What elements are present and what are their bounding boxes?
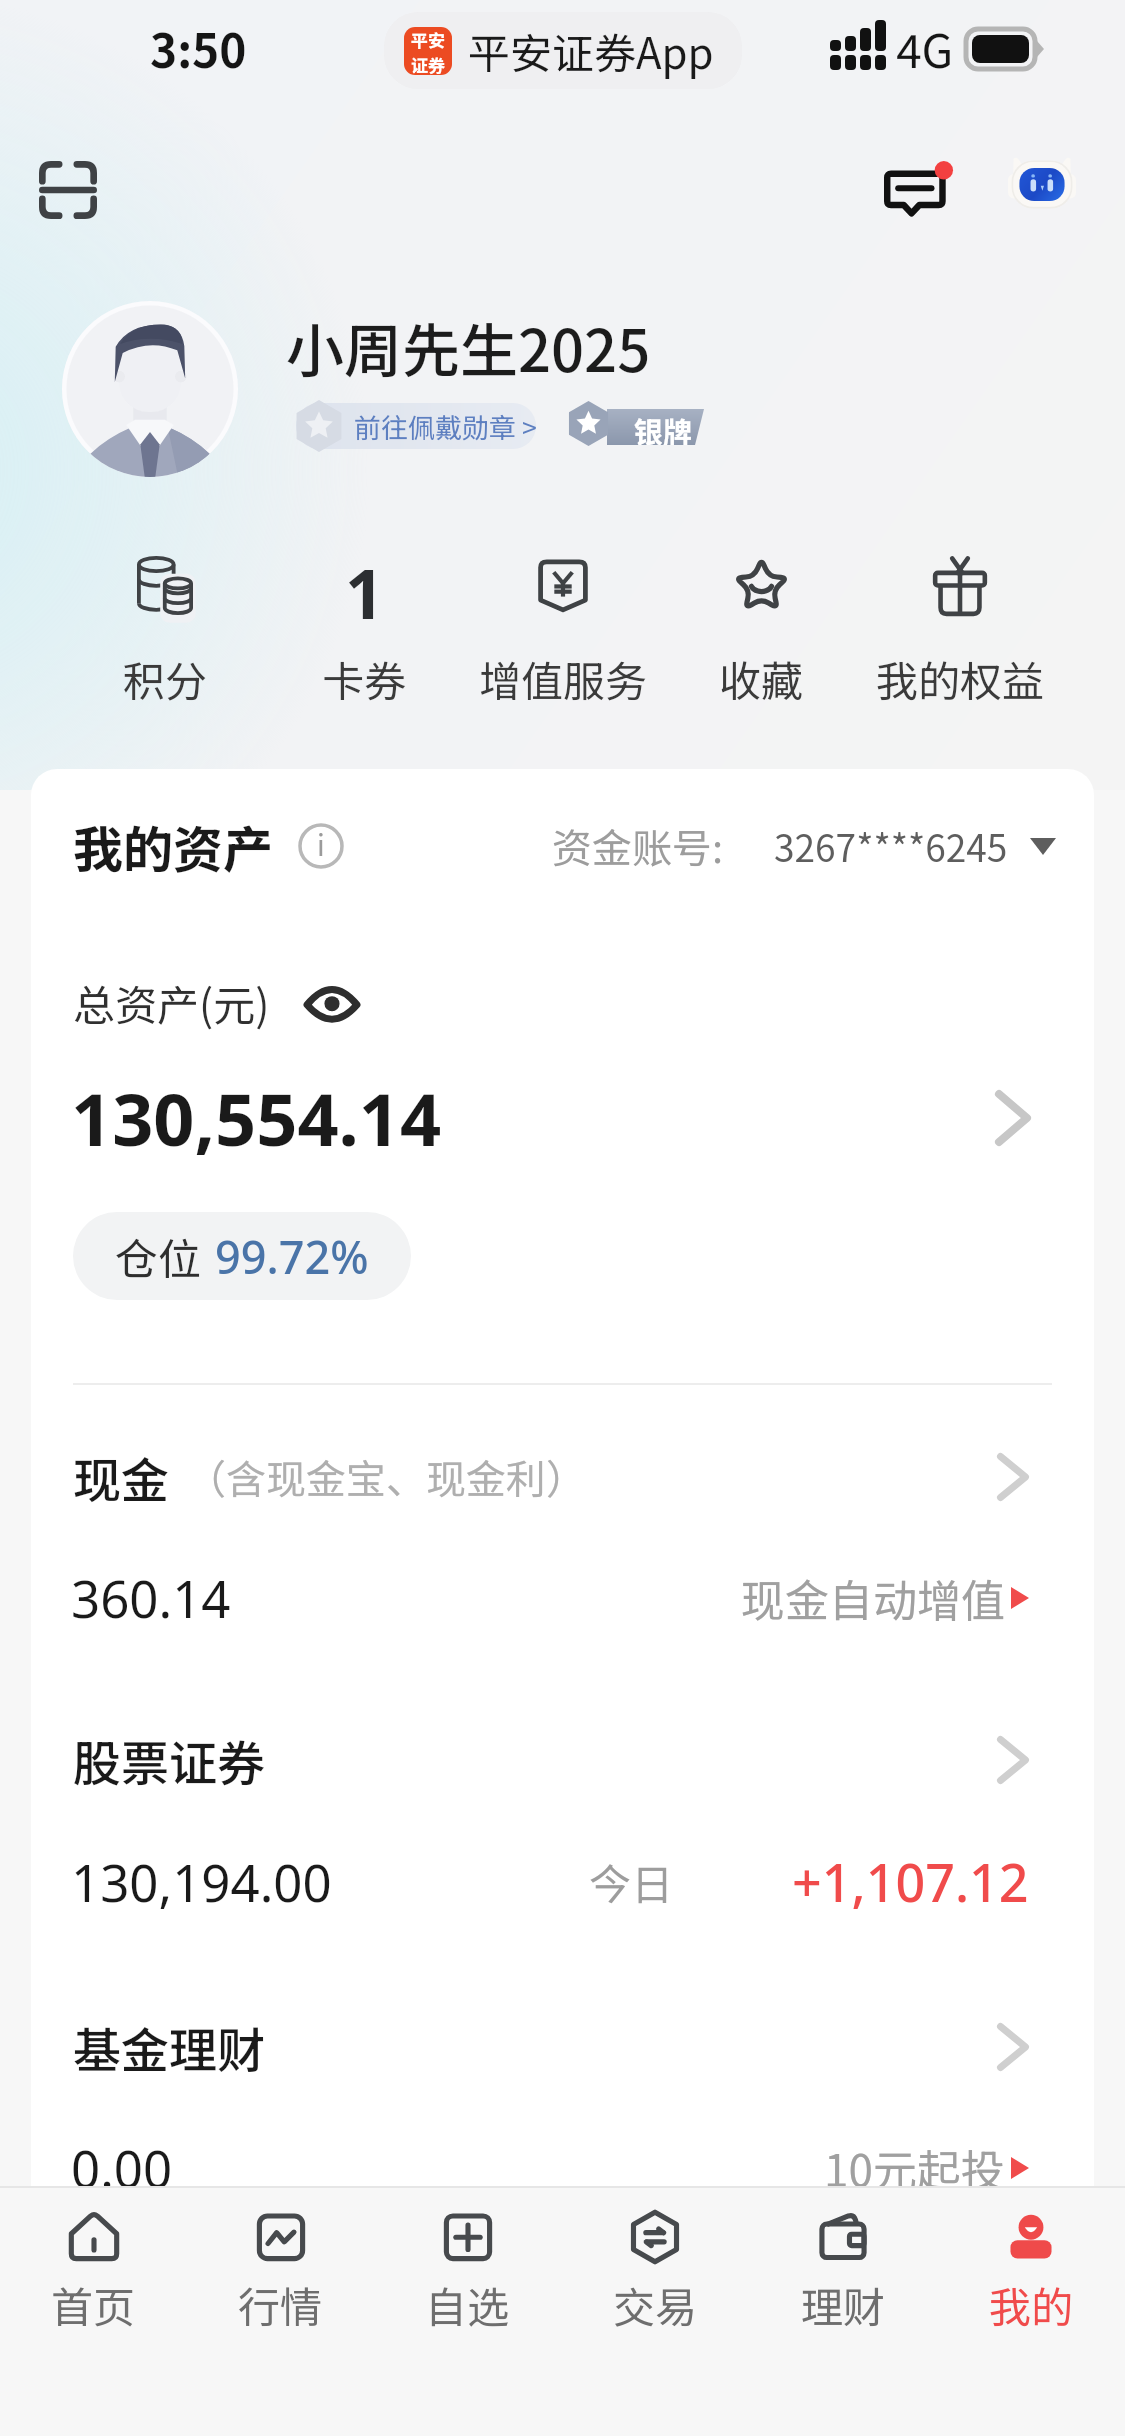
staticText: 仓位	[115, 1225, 201, 1287]
staticText: 4G	[896, 15, 954, 82]
staticText: 0.00	[71, 2133, 173, 2202]
staticText: 我的权益	[876, 648, 1045, 709]
staticText: 10元起投	[824, 2136, 1005, 2200]
button[interactable]: Scan code	[28, 150, 108, 230]
staticText: 我的	[989, 2274, 1074, 2335]
staticText: 现金自动增值	[741, 1566, 1005, 1630]
button[interactable]: Profile picture	[62, 301, 238, 477]
staticText: +1,107.12	[792, 1846, 1029, 1917]
staticText: 现金	[73, 1442, 170, 1512]
staticText: 3267****6245	[774, 819, 1008, 873]
staticText: 小周先生2025	[286, 305, 651, 389]
staticText: 130,194.00	[71, 1847, 332, 1916]
button[interactable]: 行情	[187, 2188, 374, 2436]
button[interactable]: 股票证券	[31, 1725, 1094, 1917]
button[interactable]: 首页	[0, 2188, 187, 2436]
staticText: 增值服务	[479, 648, 648, 709]
button[interactable]: 前往佩戴勋章 >	[296, 403, 536, 449]
staticText: 收藏	[719, 648, 804, 709]
button[interactable]: 积分	[66, 546, 264, 709]
staticText: 我的资产	[73, 810, 273, 882]
staticText: 99.72%	[215, 1226, 369, 1287]
staticText: 130,554.14	[71, 1069, 442, 1167]
staticText: 平安证券App	[468, 20, 714, 81]
staticText: 首页	[51, 2274, 136, 2335]
staticText: 3:50	[150, 15, 247, 82]
button[interactable]: 1	[265, 546, 463, 709]
button[interactable]: 收藏	[662, 546, 860, 709]
button[interactable]: 仓位	[73, 1212, 411, 1300]
staticText: 360.14	[71, 1563, 231, 1632]
button[interactable]: 理财	[749, 2188, 937, 2436]
staticText: 证券	[411, 52, 445, 75]
staticText: i	[317, 824, 325, 865]
staticText: 资金账号:	[552, 817, 724, 875]
staticText: 总资产(元)	[73, 972, 270, 1033]
staticText: 股票证券	[73, 1725, 266, 1795]
staticText: 基金理财	[73, 2012, 266, 2082]
button[interactable]: 交易	[561, 2188, 749, 2436]
button[interactable]: 基金理财	[31, 2012, 1094, 2202]
staticText: 平安	[411, 27, 445, 52]
staticText: 行情	[238, 2274, 323, 2335]
staticText: 积分	[123, 648, 208, 709]
staticText: 前往佩戴勋章 >	[354, 407, 536, 446]
button[interactable]: 自选	[374, 2188, 561, 2436]
button[interactable]: Toggle balance visibility	[302, 973, 362, 1033]
button[interactable]: 130,554.14	[71, 1069, 1031, 1167]
button[interactable]: Messages	[884, 145, 972, 229]
button[interactable]: AI assistant	[1005, 152, 1091, 228]
staticText: 理财	[801, 2274, 886, 2335]
button[interactable]: 现金	[31, 1442, 1094, 1632]
button[interactable]: 我的权益	[861, 546, 1059, 709]
staticText: 1	[345, 546, 384, 624]
staticText: 自选	[425, 2274, 510, 2335]
staticText: 银牌	[634, 409, 693, 445]
button[interactable]: 我的	[937, 2188, 1125, 2436]
staticText: 交易	[613, 2274, 698, 2335]
button[interactable]: Information	[297, 822, 345, 870]
button[interactable]: 银牌	[607, 409, 704, 445]
staticText: （含现金宝、现金利）	[186, 1448, 586, 1506]
staticText: 今日	[589, 1851, 674, 1912]
button[interactable]: 增值服务	[464, 546, 662, 709]
staticText: 卡券	[322, 648, 407, 709]
button[interactable]: 资金账号:	[552, 817, 1056, 875]
